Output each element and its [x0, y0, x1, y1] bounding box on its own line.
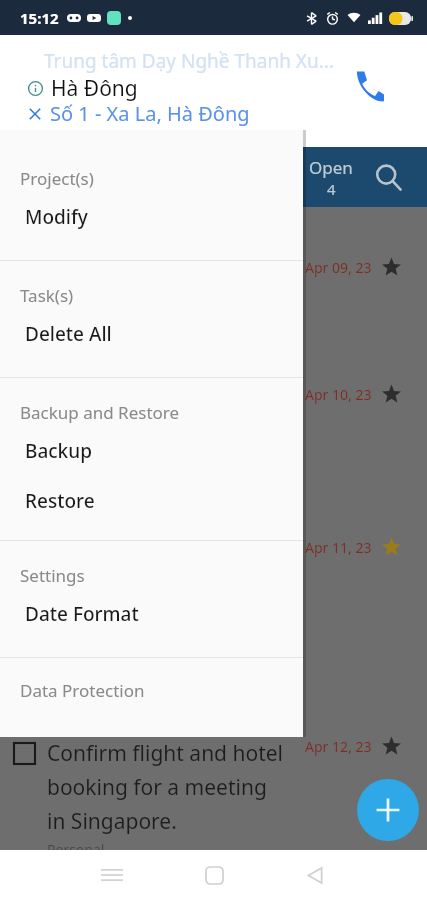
staticText: Apr 11, 23	[305, 538, 372, 557]
staticText: Trung tâm Dạy Nghề Thanh Xu...	[44, 48, 335, 74]
staticText: Apr 09, 23	[305, 258, 372, 277]
staticText: Settings	[20, 564, 85, 587]
button[interactable]: Add task	[357, 779, 419, 841]
staticText: Backup	[25, 438, 92, 464]
staticText: Open	[309, 156, 353, 179]
staticText: Hà Đông	[51, 74, 138, 103]
button[interactable]: Restore	[0, 480, 303, 522]
button[interactable]: Trung tâm Dạy Nghề Thanh Xu...	[22, 48, 405, 122]
staticText: Confirm flight and hotel	[47, 739, 284, 768]
staticText: Restore	[25, 488, 95, 514]
staticText: Personal	[47, 840, 105, 850]
button[interactable]: Back	[291, 850, 339, 900]
button[interactable]: Search	[362, 151, 414, 203]
staticText: Date Format	[25, 601, 139, 627]
staticText: Apr 10, 23	[305, 385, 372, 404]
staticText: Apr 12, 23	[305, 737, 372, 756]
staticText: booking for a meeting	[47, 773, 267, 802]
button[interactable]: Recent apps	[88, 850, 136, 900]
button[interactable]: Backup	[0, 430, 303, 472]
button[interactable]: Confirm flight and hotel	[0, 737, 300, 850]
button[interactable]: Open	[300, 156, 362, 199]
button[interactable]: Call	[347, 65, 387, 105]
button[interactable]: Delete All	[0, 313, 303, 355]
staticText: Project(s)	[20, 167, 94, 190]
staticText: Task(s)	[20, 284, 74, 307]
staticText: Modify	[25, 204, 88, 230]
staticText: 15:12	[20, 8, 59, 28]
button[interactable]: Date Format	[0, 593, 303, 635]
staticText: Backup and Restore	[20, 401, 180, 424]
staticText: Delete All	[25, 321, 112, 347]
staticText: 4	[327, 179, 336, 199]
staticText: Data Protection	[20, 679, 145, 702]
button[interactable]: Home	[190, 850, 238, 900]
staticText: Số 1 - Xa La, Hà Đông	[50, 100, 250, 127]
staticText: in Singapore.	[47, 807, 177, 836]
button[interactable]: Modify	[0, 196, 303, 238]
